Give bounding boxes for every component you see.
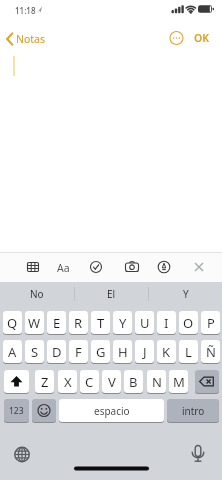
button[interactable]: I xyxy=(157,311,176,335)
button[interactable]: Z xyxy=(35,370,54,394)
staticText: O xyxy=(183,314,194,332)
staticText: Notas xyxy=(16,32,46,46)
button[interactable]: L xyxy=(179,340,198,364)
button[interactable]: OK xyxy=(194,31,210,45)
button[interactable] xyxy=(4,370,29,394)
button[interactable]: Aa xyxy=(57,261,70,275)
button[interactable]: H xyxy=(113,340,132,364)
staticText: Y xyxy=(183,287,189,301)
staticText: S xyxy=(31,343,39,361)
button[interactable]: O xyxy=(179,311,198,335)
staticText: intro xyxy=(182,404,205,418)
staticText: V xyxy=(108,373,116,391)
button[interactable]: El xyxy=(75,282,148,306)
staticText: D xyxy=(52,343,62,361)
button[interactable] xyxy=(169,31,184,46)
staticText: C xyxy=(85,373,94,391)
button[interactable]: J xyxy=(135,340,154,364)
button[interactable]: T xyxy=(91,311,110,335)
staticText: 11:18 xyxy=(15,5,36,16)
button[interactable]: R xyxy=(69,311,88,335)
button[interactable] xyxy=(195,370,219,394)
staticText: E xyxy=(53,314,61,332)
button[interactable]: 123 xyxy=(4,399,29,423)
button[interactable]: Notas xyxy=(4,26,46,52)
button[interactable] xyxy=(32,399,56,423)
button[interactable]: E xyxy=(47,311,66,335)
button[interactable]: Q xyxy=(3,311,22,335)
staticText: X xyxy=(64,373,72,391)
staticText: G xyxy=(96,343,106,361)
staticText: T xyxy=(97,314,105,332)
button[interactable]: intro xyxy=(167,399,219,423)
button[interactable]: M xyxy=(169,370,188,394)
staticText: P xyxy=(207,314,215,332)
button[interactable]: D xyxy=(47,340,66,364)
staticText: Z xyxy=(41,373,49,391)
staticText: L xyxy=(185,343,192,361)
staticText: No xyxy=(30,287,44,301)
staticText: El xyxy=(107,287,116,301)
button[interactable]: espacio xyxy=(59,399,164,423)
button[interactable]: Ñ xyxy=(201,340,220,364)
staticText: R xyxy=(74,314,83,332)
button[interactable]: A xyxy=(3,340,22,364)
staticText: J xyxy=(143,343,147,361)
button[interactable]: X xyxy=(58,370,77,394)
staticText: Ñ xyxy=(206,343,216,361)
button[interactable]: B xyxy=(124,370,143,394)
button[interactable]: No xyxy=(0,282,74,306)
staticText: I xyxy=(164,314,169,332)
staticText: W xyxy=(28,314,41,332)
button[interactable]: W xyxy=(25,311,44,335)
button[interactable]: G xyxy=(91,340,110,364)
button[interactable]: Y xyxy=(149,282,222,306)
button[interactable]: S xyxy=(25,340,44,364)
staticText: 123 xyxy=(9,405,24,417)
button[interactable]: V xyxy=(102,370,121,394)
button[interactable]: F xyxy=(69,340,88,364)
staticText: M xyxy=(173,373,185,391)
staticText: Q xyxy=(7,314,18,332)
button[interactable]: U xyxy=(135,311,154,335)
staticText: B xyxy=(129,373,138,391)
staticText: Y xyxy=(119,314,127,332)
staticText: A xyxy=(8,343,17,361)
staticText: N xyxy=(152,373,162,391)
staticText: K xyxy=(162,343,171,361)
staticText: U xyxy=(140,314,150,332)
staticText: H xyxy=(118,343,128,361)
staticText: espacio xyxy=(94,404,130,418)
button[interactable]: K xyxy=(157,340,176,364)
button[interactable]: C xyxy=(80,370,99,394)
button[interactable]: Y xyxy=(113,311,132,335)
button[interactable]: P xyxy=(201,311,220,335)
button[interactable]: N xyxy=(147,370,166,394)
staticText: F xyxy=(75,343,82,361)
